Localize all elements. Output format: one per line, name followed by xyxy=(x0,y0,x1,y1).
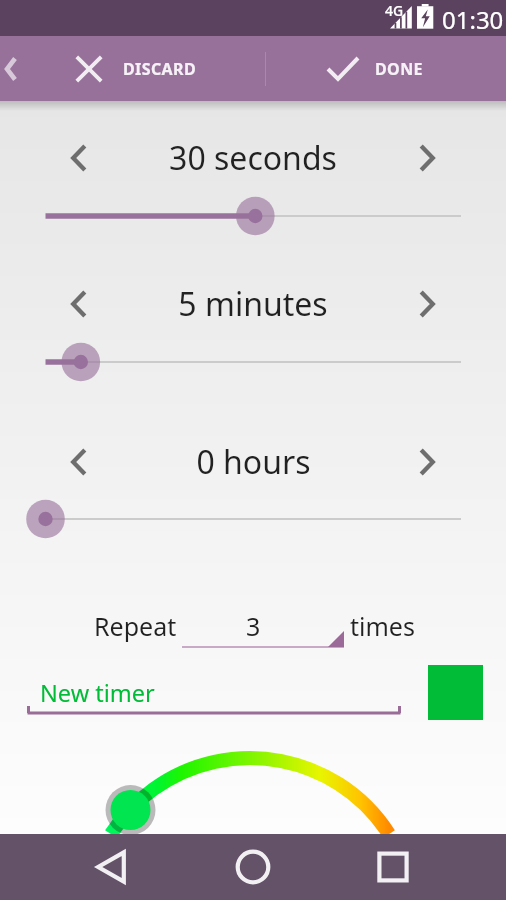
button[interactable]: Increase 0 hours xyxy=(403,438,451,486)
button[interactable]: Timer name xyxy=(27,674,401,719)
staticText: 0 hours xyxy=(196,440,311,484)
staticText: 5 minutes xyxy=(178,282,328,326)
button[interactable]: Increase 5 minutes xyxy=(403,280,451,328)
button[interactable]: Repeat count, 3 xyxy=(182,602,344,650)
button[interactable]: Recent apps xyxy=(368,834,418,900)
button[interactable]: DISCARD xyxy=(72,36,197,101)
button[interactable]: Back xyxy=(86,834,136,900)
button[interactable]: 0 hours slider xyxy=(0,495,506,543)
staticText: 01:30 xyxy=(442,3,504,36)
button[interactable]: DONE xyxy=(320,36,423,101)
staticText: times xyxy=(350,609,415,643)
button[interactable]: Decrease 30 seconds xyxy=(55,134,103,182)
button[interactable]: Timer colour picker xyxy=(0,0,506,900)
staticText: DONE xyxy=(375,58,423,80)
button[interactable]: Navigate up xyxy=(0,45,30,93)
staticText: New timer xyxy=(40,677,155,709)
button[interactable]: Home xyxy=(228,834,278,900)
button[interactable]: Decrease 0 hours xyxy=(55,438,103,486)
staticText: 4G xyxy=(385,1,404,20)
staticText: Repeat xyxy=(94,609,177,643)
button[interactable]: 5 minutes slider xyxy=(0,338,506,386)
button[interactable]: Decrease 5 minutes xyxy=(55,280,103,328)
staticText: DISCARD xyxy=(123,58,197,80)
staticText: 30 seconds xyxy=(169,136,337,180)
staticText: 3 xyxy=(246,609,261,643)
button[interactable]: 30 seconds slider xyxy=(0,192,506,240)
button[interactable]: Increase 30 seconds xyxy=(403,134,451,182)
